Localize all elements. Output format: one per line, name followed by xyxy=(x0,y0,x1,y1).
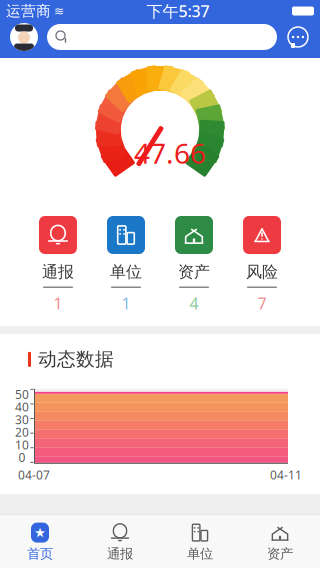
staticText: 风险 xyxy=(246,262,278,282)
staticText: 7 xyxy=(257,293,266,314)
staticText: 单位 xyxy=(187,546,213,562)
button[interactable]: 个人中心 xyxy=(10,23,38,51)
staticText: 40 xyxy=(15,399,29,415)
staticText: 单位 xyxy=(110,262,142,282)
button[interactable]: 单位 xyxy=(160,518,240,566)
button[interactable]: 风险 xyxy=(228,216,296,314)
staticText: 下午5:37 xyxy=(146,0,209,22)
button[interactable]: 资产 xyxy=(160,216,228,314)
staticText: 资产 xyxy=(178,262,210,282)
button[interactable]: 单位 xyxy=(92,216,160,314)
staticText: 1 xyxy=(53,293,62,314)
button[interactable]: ★ xyxy=(0,518,80,566)
staticText: 20 xyxy=(15,424,29,440)
staticText: 动态数据 xyxy=(38,348,114,371)
staticText: 4 xyxy=(189,293,198,314)
staticText: ≋ xyxy=(54,4,64,18)
staticText: ★ xyxy=(34,525,46,540)
staticText: 04-11 xyxy=(270,467,302,483)
staticText: 通报 xyxy=(107,546,133,562)
button[interactable]: 搜索 xyxy=(47,24,277,50)
staticText: 47.66 xyxy=(134,134,206,172)
button[interactable]: 资产 xyxy=(240,518,320,566)
button[interactable]: 通报 xyxy=(24,216,92,314)
staticText: 1 xyxy=(121,293,130,314)
staticText: 首页 xyxy=(27,546,53,562)
button[interactable]: 通报 xyxy=(80,518,160,566)
staticText: 运营商 xyxy=(6,2,51,20)
staticText: 资产 xyxy=(267,546,293,562)
staticText: 10 xyxy=(15,437,29,453)
staticText: 通报 xyxy=(42,262,74,282)
staticText: 30 xyxy=(15,412,29,427)
button[interactable]: 消息 xyxy=(286,25,310,49)
staticText: 04-07 xyxy=(18,467,50,483)
staticText: 0 xyxy=(18,449,25,465)
staticText: 50 xyxy=(15,386,29,402)
